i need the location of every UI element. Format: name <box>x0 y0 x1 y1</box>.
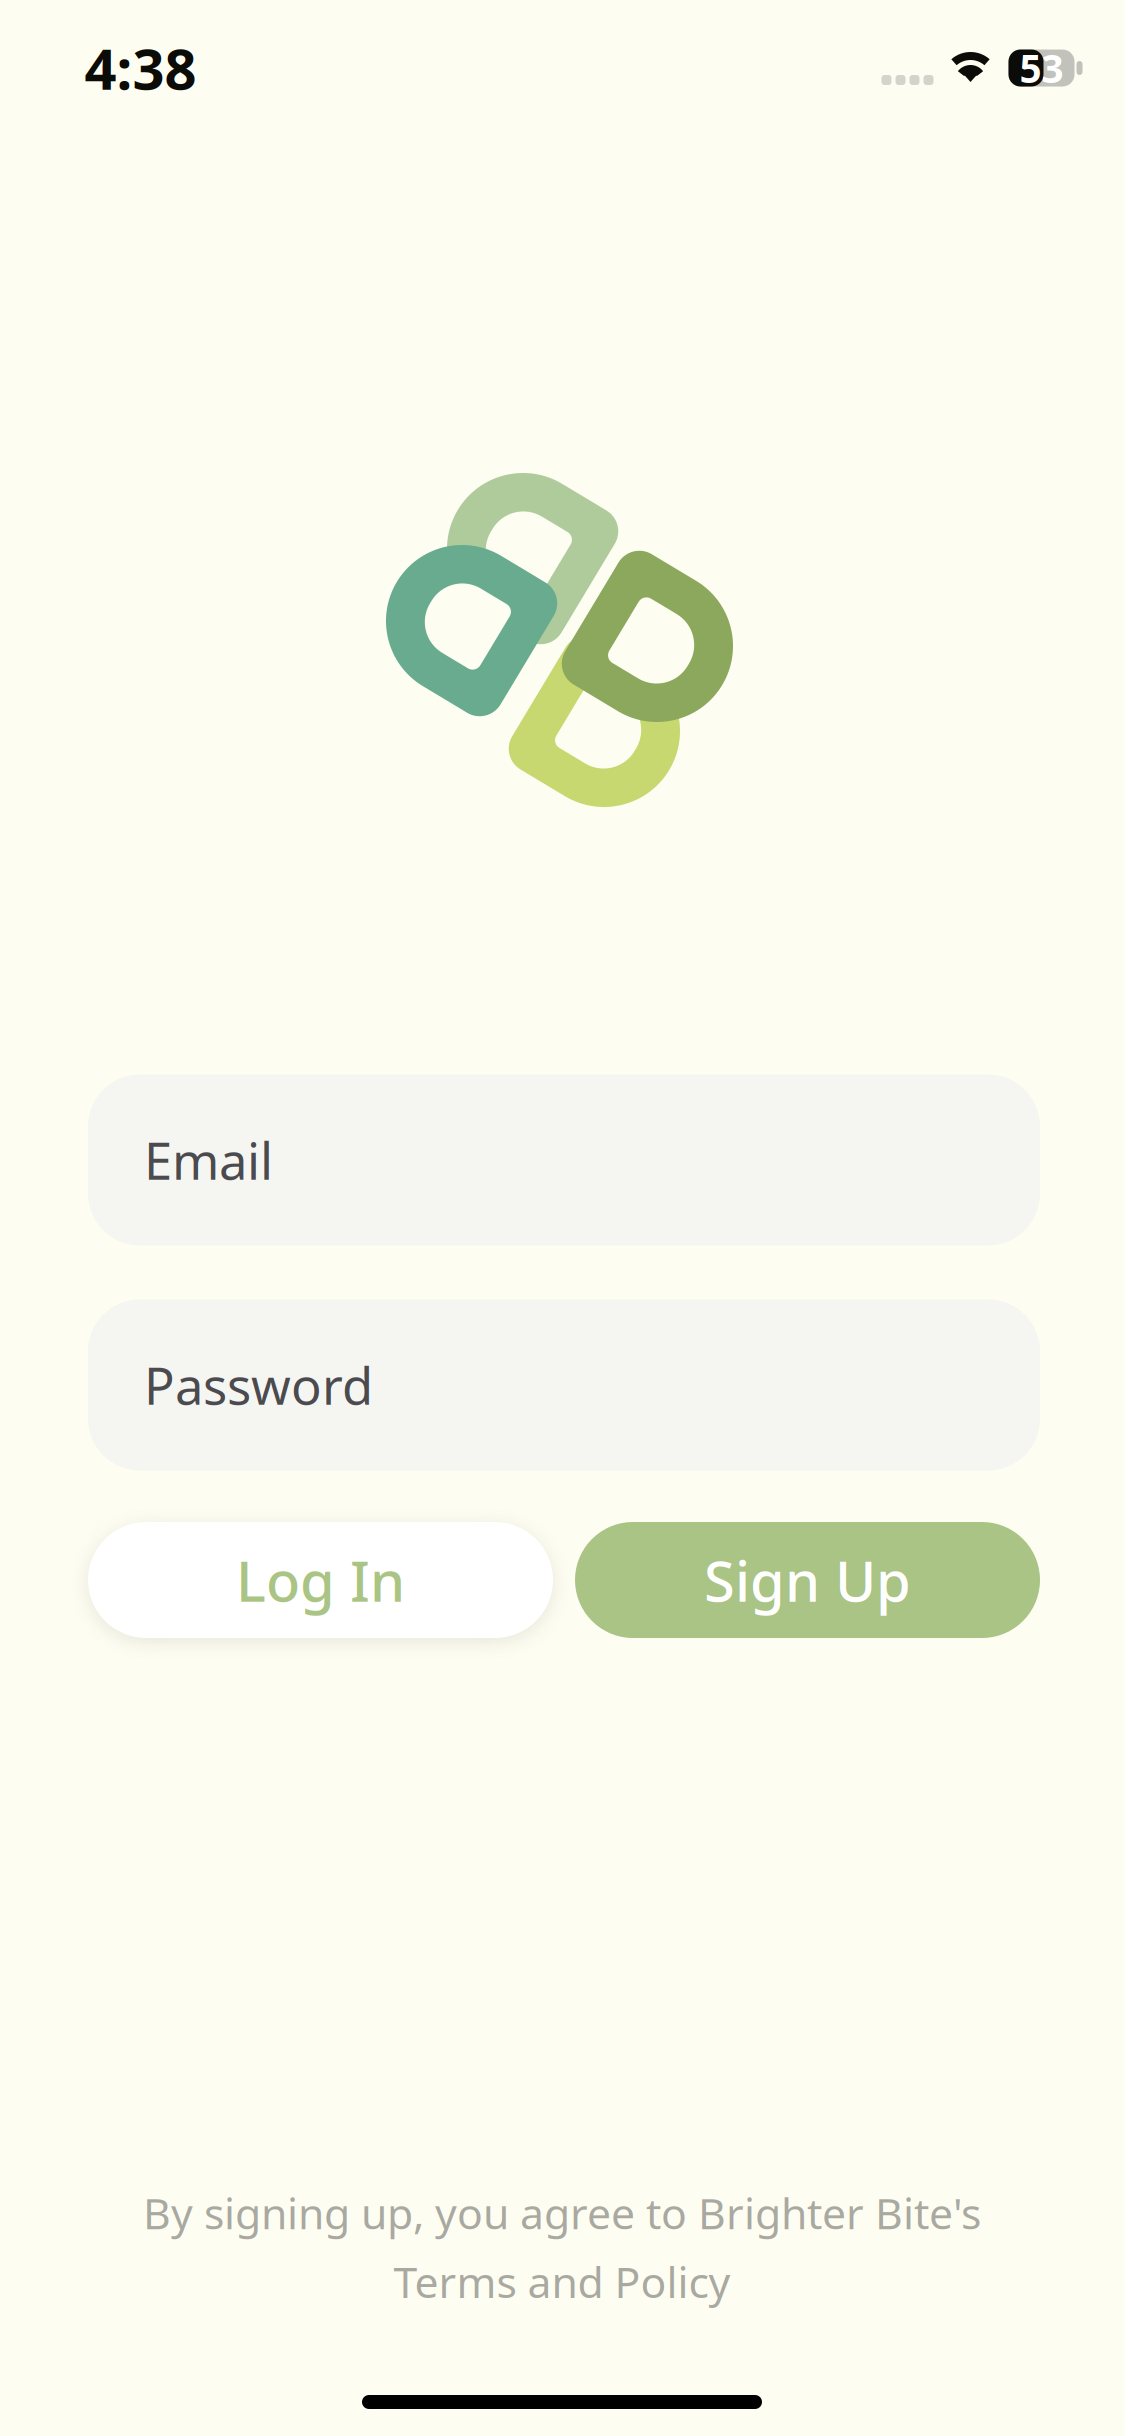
button[interactable]: Log In <box>88 1522 553 1638</box>
button[interactable]: Email <box>88 1074 1040 1245</box>
staticText: Log In <box>236 1543 405 1617</box>
staticText: 4:38 <box>84 31 196 105</box>
staticText: Password <box>144 1351 373 1419</box>
button[interactable]: Password <box>88 1299 1040 1470</box>
staticText: Sign Up <box>704 1543 911 1617</box>
staticText: Terms and Policy <box>393 2253 730 2310</box>
staticText: 53 <box>1019 42 1063 94</box>
staticText: By signing up, you agree to Brighter Bit… <box>143 2184 981 2241</box>
button[interactable]: Sign Up <box>575 1522 1040 1638</box>
staticText: Email <box>144 1126 273 1194</box>
